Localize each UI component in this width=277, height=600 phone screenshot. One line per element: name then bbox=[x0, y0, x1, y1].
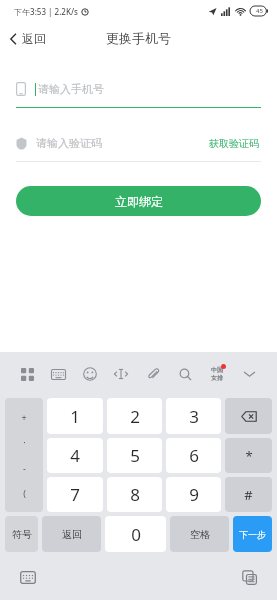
staticText: 9 bbox=[189, 483, 199, 506]
staticText: 3 bbox=[189, 405, 199, 428]
button[interactable]: 中国 bbox=[201, 366, 233, 382]
button[interactable]: 立即绑定 bbox=[16, 186, 261, 216]
button[interactable]: 0 bbox=[105, 516, 166, 552]
button[interactable]: 3 bbox=[166, 398, 221, 434]
staticText: 0 bbox=[131, 523, 141, 546]
button[interactable]: 符号 bbox=[5, 516, 38, 552]
staticText: 更换手机号 bbox=[106, 30, 171, 46]
button[interactable]: + bbox=[5, 398, 43, 512]
button[interactable]: Backspace bbox=[225, 398, 272, 434]
button[interactable]: 空格 bbox=[170, 516, 229, 552]
staticText: 返回 bbox=[62, 528, 82, 541]
button[interactable]: 6 bbox=[166, 438, 221, 473]
staticText: 4 bbox=[70, 444, 80, 467]
button[interactable]: 请输入验证码 bbox=[16, 130, 207, 156]
button[interactable]: Clipboard history bbox=[238, 566, 261, 589]
staticText: 获取验证码 bbox=[209, 137, 259, 150]
button[interactable]: Clipboard bbox=[137, 352, 169, 396]
staticText: 符号 bbox=[12, 528, 32, 541]
staticText: ( bbox=[23, 487, 26, 499]
staticText: 8 bbox=[130, 483, 140, 506]
button[interactable]: # bbox=[225, 477, 272, 512]
button[interactable]: Switch keyboard bbox=[16, 567, 40, 588]
button[interactable]: 返回 bbox=[42, 516, 101, 552]
staticText: 2 bbox=[130, 405, 140, 428]
staticText: 7 bbox=[70, 483, 80, 506]
button[interactable]: Search bbox=[169, 352, 201, 396]
button[interactable]: 1 bbox=[47, 398, 103, 434]
staticText: · bbox=[23, 436, 26, 448]
staticText: 中国 bbox=[211, 366, 223, 374]
staticText: 5 bbox=[130, 444, 140, 467]
staticText: 立即绑定 bbox=[115, 194, 163, 209]
staticText: 6 bbox=[189, 444, 199, 467]
button[interactable]: 下一步 bbox=[233, 516, 272, 552]
button[interactable]: 8 bbox=[107, 477, 162, 512]
button[interactable]: Keyboard bbox=[43, 352, 74, 396]
staticText: * bbox=[245, 447, 253, 465]
button[interactable]: 2 bbox=[107, 398, 162, 434]
staticText: + bbox=[21, 411, 27, 423]
staticText: 45 bbox=[256, 7, 263, 15]
staticText: 返回 bbox=[22, 31, 46, 46]
staticText: 空格 bbox=[190, 528, 210, 541]
button[interactable]: Emoji bbox=[74, 352, 105, 396]
button[interactable]: * bbox=[225, 438, 272, 473]
staticText: 女排 bbox=[211, 374, 223, 382]
staticText: 下午3:53 | 2.2K/s bbox=[14, 6, 78, 17]
staticText: 请输入验证码 bbox=[36, 136, 102, 150]
staticText: 1 bbox=[70, 405, 80, 428]
button[interactable]: 获取验证码 bbox=[207, 133, 261, 154]
button[interactable]: 5 bbox=[107, 438, 162, 473]
button[interactable]: Apps bbox=[12, 352, 43, 396]
button[interactable]: Move cursor bbox=[105, 352, 137, 396]
button[interactable]: 请输入手机号 bbox=[16, 76, 261, 102]
button[interactable]: 返回 bbox=[0, 27, 56, 50]
button[interactable]: Hide keyboard bbox=[233, 352, 265, 396]
button[interactable]: 9 bbox=[166, 477, 221, 512]
staticText: 下一步 bbox=[239, 529, 266, 540]
staticText: 请输入手机号 bbox=[38, 82, 104, 96]
staticText: # bbox=[244, 486, 253, 504]
button[interactable]: 7 bbox=[47, 477, 103, 512]
button[interactable]: 4 bbox=[47, 438, 103, 473]
staticText: - bbox=[23, 462, 26, 474]
